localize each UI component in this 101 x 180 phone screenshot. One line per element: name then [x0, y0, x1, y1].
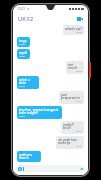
button[interactable]: Attach photo	[17, 166, 22, 171]
staticText: 10:19	[76, 145, 82, 148]
button[interactable]: what u doin	[17, 76, 39, 89]
button[interactable]: not much	[66, 61, 84, 74]
button[interactable]: hey bro, wanna hangout later tnight?	[17, 106, 62, 119]
staticText: what u doin	[19, 77, 37, 85]
button[interactable]: Video call	[76, 15, 84, 22]
button[interactable]: really?! bruh	[61, 121, 84, 134]
staticText: not much	[68, 62, 82, 70]
staticText: 10:16	[19, 115, 25, 118]
button[interactable]: Attach photo	[16, 165, 85, 172]
staticText: wait yes then k	[19, 152, 39, 160]
staticText: 10:06	[19, 43, 25, 46]
staticText: 10:06	[19, 55, 25, 58]
staticText: heyy	[19, 38, 27, 43]
button[interactable]: UK F2	[17, 14, 35, 24]
staticText: 10:05	[76, 31, 82, 34]
button[interactable]: Send	[79, 166, 84, 171]
button[interactable]: wyd?	[17, 49, 30, 59]
button[interactable]: what's up?	[63, 25, 84, 35]
button[interactable]: wait yes then k	[17, 151, 41, 162]
staticText: 10:21	[17, 7, 26, 11]
staticText: what's up?	[65, 26, 82, 31]
button[interactable]: ok yeah lets meet tp	[56, 136, 84, 149]
staticText: UK F2	[18, 15, 34, 23]
staticText: 10:18	[76, 130, 82, 133]
staticText: just prepared rn	[61, 92, 82, 100]
staticText: ok yeah lets meet tp	[58, 137, 82, 145]
staticText: 10:09	[76, 70, 82, 73]
button[interactable]: just prepared rn	[59, 91, 84, 104]
button[interactable]: heyy	[17, 37, 30, 47]
staticText: 10:12	[19, 85, 25, 88]
staticText: hey bro, wanna hangout later tnight?	[19, 107, 60, 115]
staticText: 10:14	[76, 100, 82, 103]
staticText: wyd?	[19, 50, 27, 55]
staticText: really?! bruh	[63, 122, 82, 130]
